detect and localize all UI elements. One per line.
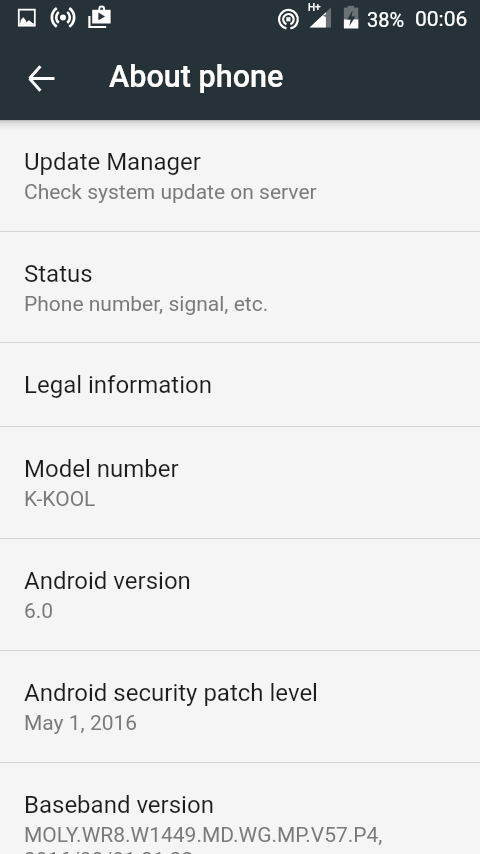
- staticText: Android version: [24, 567, 191, 595]
- button[interactable]: Legal information: [0, 343, 480, 426]
- staticText: Legal information: [24, 371, 212, 399]
- staticText: Phone number, signal, etc.: [24, 292, 269, 317]
- staticText: Check system update on server: [24, 180, 317, 205]
- staticText: MOLY.WR8.W1449.MD.WG.MP.V57.P4, 2016/03/…: [24, 823, 383, 854]
- button[interactable]: Baseband version: [0, 763, 480, 854]
- staticText: 6.0: [24, 599, 54, 624]
- staticText: Baseband version: [24, 791, 214, 819]
- staticText: 00:06: [415, 7, 468, 32]
- staticText: Model number: [24, 455, 179, 483]
- staticText: Status: [24, 260, 93, 288]
- button[interactable]: Model number: [0, 427, 480, 538]
- button[interactable]: Android version: [0, 539, 480, 650]
- staticText: Update Manager: [24, 148, 201, 176]
- button[interactable]: Back: [17, 54, 65, 102]
- button[interactable]: Update Manager: [0, 120, 480, 231]
- button[interactable]: Android security patch level: [0, 651, 480, 762]
- staticText: H+: [308, 2, 321, 14]
- staticText: K-KOOL: [24, 487, 96, 512]
- staticText: About phone: [109, 59, 284, 95]
- staticText: 38%: [367, 8, 405, 31]
- staticText: Android security patch level: [24, 679, 318, 707]
- staticText: May 1, 2016: [24, 711, 138, 736]
- button[interactable]: Status: [0, 232, 480, 342]
